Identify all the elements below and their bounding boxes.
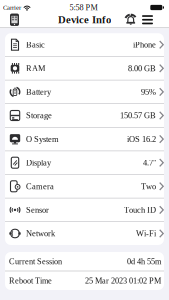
button[interactable]: Basic <box>5 33 164 56</box>
button[interactable]: Storage <box>5 104 164 127</box>
staticText: Battery <box>26 87 51 96</box>
staticText: 5:58 PM <box>69 3 97 12</box>
staticText: Current Session <box>9 257 62 266</box>
staticText: Storage <box>26 111 52 120</box>
staticText: Two <box>141 182 156 191</box>
staticText: 0d 4h 55m <box>127 257 161 266</box>
button[interactable]: RAM <box>5 57 164 80</box>
button[interactable]: Sensor <box>5 198 164 221</box>
staticText: Network <box>26 229 55 238</box>
staticText: 95% <box>141 87 156 96</box>
button[interactable]: Camera <box>5 175 164 198</box>
button[interactable]: Notifications <box>124 13 138 26</box>
staticText: iPhone <box>133 40 156 49</box>
staticText: Wi-Fi <box>136 229 156 238</box>
staticText: 4.7" <box>143 158 156 167</box>
staticText: Device Info <box>58 14 111 26</box>
staticText: 150.57 GB <box>120 111 156 120</box>
button[interactable]: Display <box>5 151 164 174</box>
staticText: Basic <box>26 40 45 49</box>
button[interactable]: Network <box>5 222 164 245</box>
staticText: RAM <box>26 64 45 73</box>
button[interactable]: O System <box>5 128 164 151</box>
button[interactable]: Menu <box>138 15 153 24</box>
staticText: Camera <box>26 182 54 191</box>
staticText: Touch ID <box>124 205 156 214</box>
staticText: Carrier <box>3 4 21 11</box>
staticText: Reboot Time <box>9 276 52 285</box>
staticText: Sensor <box>26 205 49 214</box>
staticText: O System <box>26 134 59 144</box>
staticText: iOS 16.2 <box>127 134 156 144</box>
staticText: 25 Mar 2023 01:02 PM <box>85 276 161 285</box>
button[interactable]: Battery <box>5 80 164 103</box>
staticText: Display <box>26 158 51 167</box>
button[interactable]: Device <box>8 13 21 26</box>
staticText: 8.00 GB <box>128 64 156 73</box>
